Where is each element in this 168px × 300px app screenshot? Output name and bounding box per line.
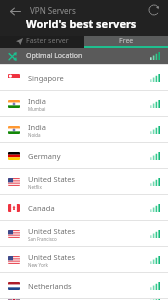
staticText: Mumbai (28, 106, 46, 112)
button[interactable]: Optimal Location (0, 48, 168, 64)
staticText: New York (28, 262, 48, 268)
staticText: Singapore (28, 73, 64, 83)
button[interactable]: India (0, 117, 168, 142)
staticText: Free (119, 36, 134, 46)
staticText: Noida (28, 132, 41, 138)
button[interactable]: Singapore (0, 65, 168, 90)
staticText: World's best servers (26, 16, 137, 31)
staticText: India (28, 122, 46, 132)
staticText: United States (28, 226, 76, 236)
button[interactable]: Free (84, 36, 168, 46)
button[interactable]: United States (0, 247, 168, 272)
staticText: Germany (28, 151, 61, 161)
staticText: Netflix (28, 184, 42, 190)
button[interactable]: Netherlands (0, 273, 168, 298)
staticText: Faster server (26, 36, 69, 46)
staticText: Optimal Location (26, 51, 150, 61)
button[interactable]: Germany (0, 143, 168, 168)
button[interactable]: India (0, 91, 168, 116)
button[interactable]: United States (0, 169, 168, 194)
staticText: San Francisco (28, 236, 57, 242)
button[interactable]: Refresh (144, 0, 164, 20)
staticText: United States (28, 174, 76, 184)
staticText: Netherlands (28, 281, 72, 291)
staticText: Canada (28, 203, 55, 213)
staticText: United States (28, 252, 76, 262)
staticText: India (28, 96, 46, 106)
staticText: VPN Servers (30, 5, 76, 16)
button[interactable]: Faster server (0, 36, 84, 46)
button[interactable]: United Kingdom (0, 299, 168, 300)
button[interactable]: United States (0, 221, 168, 246)
button[interactable]: Canada (0, 195, 168, 220)
button[interactable]: Back (4, 0, 26, 22)
